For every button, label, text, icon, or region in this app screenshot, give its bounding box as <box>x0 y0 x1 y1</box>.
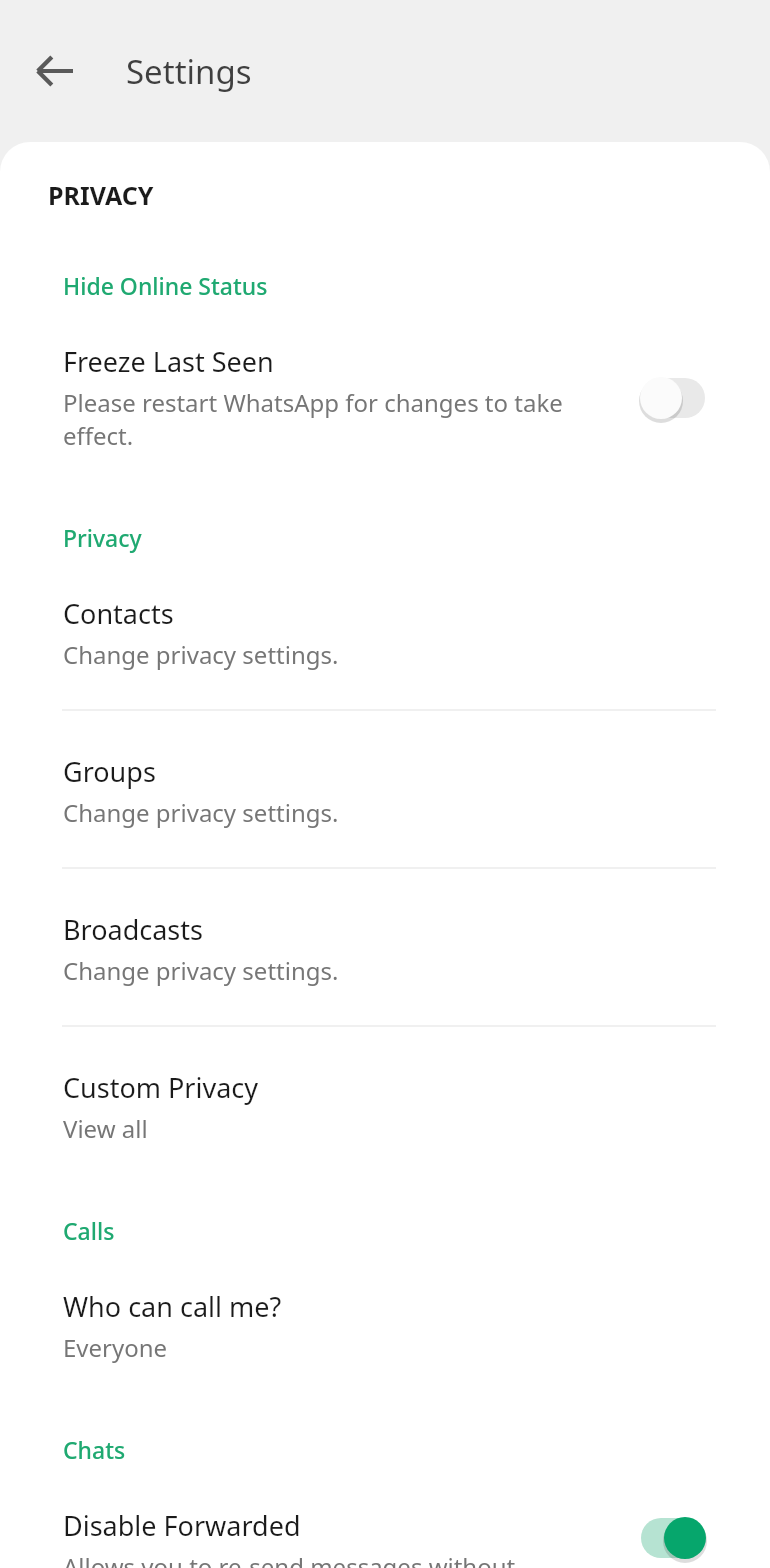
button[interactable]: Disable Forwarded <box>0 1465 770 1568</box>
staticText: Change privacy settings. <box>63 638 339 671</box>
button[interactable]: Who can call me? <box>0 1246 770 1364</box>
button[interactable]: Broadcasts <box>0 869 770 987</box>
staticText: Allows you to re-send messages without F… <box>63 1550 627 1568</box>
staticText: Broadcasts <box>63 911 203 948</box>
staticText: Who can call me? <box>63 1288 282 1325</box>
button[interactable]: Toggle off <box>637 372 715 424</box>
staticText: Custom Privacy <box>63 1069 259 1106</box>
staticText: Groups <box>63 753 156 790</box>
staticText: Everyone <box>63 1331 168 1364</box>
button[interactable]: Custom Privacy <box>0 1027 770 1145</box>
button[interactable]: Back <box>18 34 92 108</box>
button[interactable]: Freeze Last Seen <box>0 301 770 452</box>
staticText: Calls <box>63 1215 115 1246</box>
staticText: Freeze Last Seen <box>63 343 274 380</box>
staticText: Chats <box>63 1434 126 1465</box>
staticText: Change privacy settings. <box>63 954 339 987</box>
staticText: Please restart WhatsApp for changes to t… <box>63 386 627 452</box>
staticText: Privacy <box>63 522 142 553</box>
staticText: Settings <box>126 49 252 94</box>
staticText: PRIVACY <box>48 178 154 212</box>
staticText: View all <box>63 1112 148 1145</box>
staticText: Disable Forwarded <box>63 1507 301 1544</box>
button[interactable]: Toggle on <box>637 1512 715 1564</box>
button[interactable]: Contacts <box>0 553 770 671</box>
button[interactable]: Groups <box>0 711 770 829</box>
staticText: Hide Online Status <box>63 270 268 301</box>
staticText: Contacts <box>63 595 174 632</box>
staticText: Change privacy settings. <box>63 796 339 829</box>
